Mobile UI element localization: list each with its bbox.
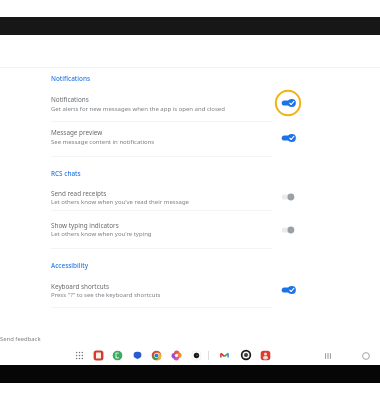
button[interactable]: Chat xyxy=(132,350,143,361)
staticText: Notifications xyxy=(51,95,89,104)
button[interactable]: Gmail xyxy=(219,350,230,361)
button[interactable]: Toggle setting xyxy=(274,124,302,152)
button[interactable] xyxy=(0,92,380,118)
staticText: Message preview xyxy=(51,128,103,137)
button[interactable]: Toggle setting xyxy=(274,276,302,304)
button[interactable]: RCS chats xyxy=(51,169,81,178)
button[interactable]: Toggle setting xyxy=(274,89,302,117)
staticText: Accessibility xyxy=(51,261,89,270)
button[interactable]: Toggle setting xyxy=(274,216,302,244)
button[interactable]: Recent apps xyxy=(322,350,334,362)
staticText: Notifications xyxy=(51,74,91,83)
button[interactable] xyxy=(0,217,380,243)
button[interactable]: Home xyxy=(360,350,372,362)
button[interactable] xyxy=(0,279,380,305)
button[interactable]: Notifications xyxy=(51,74,91,83)
button[interactable] xyxy=(0,125,380,151)
staticText: Let others know when you're typing xyxy=(51,230,152,238)
staticText: Let others know when you've read their m… xyxy=(51,198,189,206)
button[interactable]: Docs xyxy=(93,350,104,361)
button[interactable]: Contacts xyxy=(260,350,271,361)
staticText: Send feedback xyxy=(0,335,41,343)
button[interactable] xyxy=(0,186,380,212)
button[interactable]: All apps xyxy=(74,350,85,361)
button[interactable]: Toggle setting xyxy=(274,183,302,211)
staticText: Show typing indicators xyxy=(51,221,119,230)
staticText: See message content in notifications xyxy=(51,138,155,146)
button[interactable]: Camera app xyxy=(240,349,252,361)
staticText: RCS chats xyxy=(51,169,81,178)
staticText: Get alerts for new messages when the app… xyxy=(51,105,225,113)
staticText: Send read receipts xyxy=(51,189,107,198)
button[interactable]: Camera xyxy=(191,350,202,361)
button[interactable]: Phone xyxy=(112,350,123,361)
button[interactable]: Send feedback xyxy=(0,333,44,344)
staticText: Keyboard shortcuts xyxy=(51,282,109,291)
button[interactable]: Chrome xyxy=(151,350,162,361)
staticText: Press "?" to see the keyboard shortcuts xyxy=(51,291,161,299)
button[interactable]: Photos xyxy=(171,350,182,361)
button[interactable]: Accessibility xyxy=(51,261,89,270)
